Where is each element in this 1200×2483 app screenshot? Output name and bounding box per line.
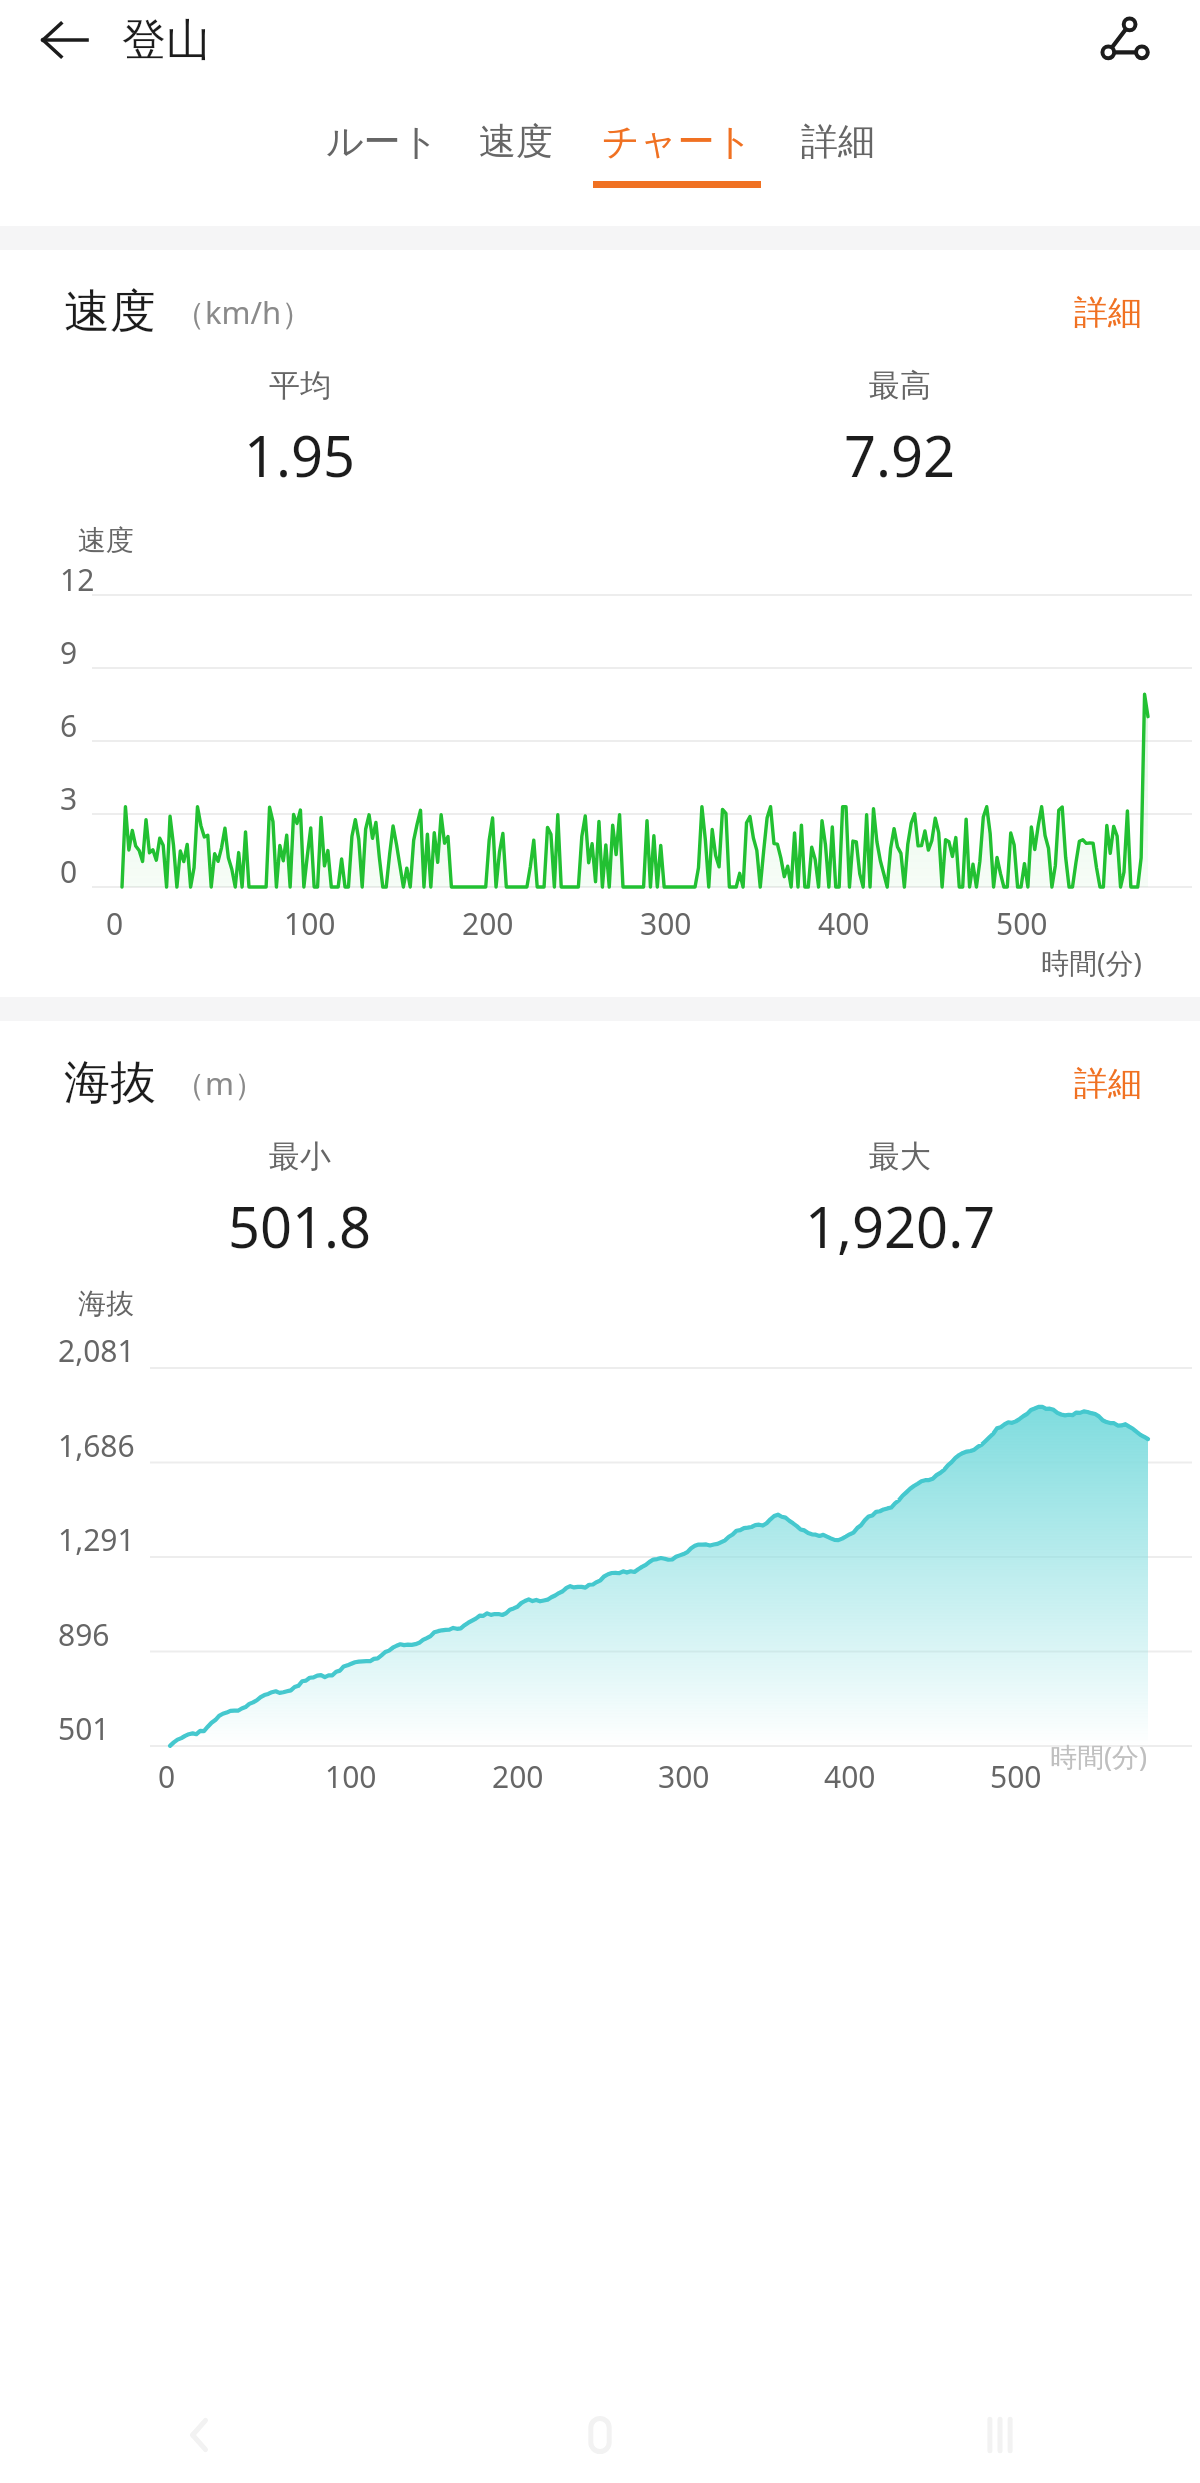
staticText: 詳細 (801, 118, 875, 165)
staticText: 300 (640, 903, 692, 944)
button[interactable]: Share (1084, 0, 1164, 80)
staticText: ルート (326, 118, 439, 165)
staticText: 詳細 (1074, 291, 1142, 334)
staticText: 500 (996, 903, 1048, 944)
staticText: 平均 (269, 366, 331, 405)
staticText: 1.95 (244, 417, 356, 493)
staticText: 海抜 (78, 1286, 134, 1321)
staticText: 2,081 (58, 1330, 135, 1371)
staticText: 501.8 (228, 1188, 372, 1264)
staticText: 6 (60, 705, 78, 746)
button[interactable]: ルート (326, 118, 439, 181)
staticText: （km/h） (174, 291, 313, 333)
staticText: 速度 (78, 523, 134, 558)
staticText: 500 (990, 1756, 1042, 1797)
staticText: 速度 (64, 283, 156, 341)
staticText: 501 (58, 1708, 110, 1749)
button[interactable]: Back (30, 5, 100, 75)
staticText: 速度 (479, 118, 553, 165)
staticText: 896 (58, 1614, 110, 1655)
staticText: 400 (818, 903, 870, 944)
staticText: 0 (158, 1756, 176, 1797)
button[interactable]: 詳細 (1074, 1062, 1142, 1105)
button[interactable]: 詳細 (801, 118, 875, 181)
staticText: 100 (284, 903, 336, 944)
staticText: 7.92 (844, 417, 956, 493)
staticText: （m） (174, 1062, 265, 1104)
staticText: 最小 (269, 1137, 331, 1176)
staticText: 0 (60, 851, 78, 892)
staticText: 12 (60, 559, 95, 600)
staticText: 400 (824, 1756, 876, 1797)
staticText: 100 (325, 1756, 377, 1797)
staticText: 最大 (869, 1137, 931, 1176)
staticText: 時間(分) (1041, 943, 1142, 981)
staticText: 0 (106, 903, 124, 944)
staticText: 1,291 (58, 1519, 135, 1560)
button[interactable]: チャート (593, 118, 761, 188)
staticText: 詳細 (1074, 1062, 1142, 1105)
staticText: 時間(分) (1050, 1738, 1148, 1775)
staticText: 200 (462, 903, 514, 944)
staticText: 最高 (869, 366, 931, 405)
staticText: 1,920.7 (805, 1188, 996, 1264)
staticText: 9 (60, 632, 78, 673)
staticText: 1,686 (58, 1425, 135, 1466)
staticText: 登山 (122, 13, 210, 68)
staticText: 300 (658, 1756, 710, 1797)
button[interactable]: 速度 (479, 118, 553, 181)
staticText: 3 (60, 778, 78, 819)
button[interactable]: 詳細 (1074, 291, 1142, 334)
staticText: 海抜 (64, 1054, 156, 1112)
staticText: チャート (602, 118, 753, 165)
staticText: 200 (492, 1756, 544, 1797)
